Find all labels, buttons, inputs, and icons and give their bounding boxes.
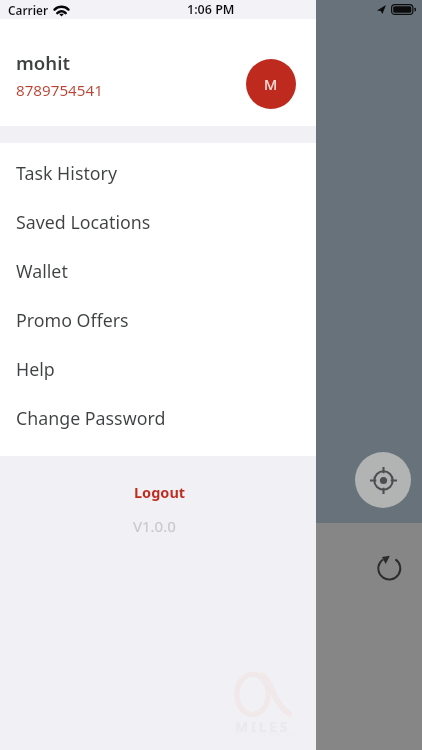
- staticText: Task History: [16, 161, 118, 185]
- staticText: Saved Locations: [16, 210, 151, 234]
- staticText: 8789754541: [16, 80, 103, 101]
- button[interactable]: Wallet: [0, 241, 316, 290]
- staticText: Wallet: [16, 259, 68, 283]
- button[interactable]: Help: [0, 339, 316, 388]
- button[interactable]: Promo Offers: [0, 290, 316, 339]
- button[interactable]: Task History: [0, 143, 316, 192]
- staticText: Logout: [134, 482, 186, 502]
- staticText: Change Password: [16, 406, 166, 430]
- button[interactable]: Logout: [128, 476, 192, 508]
- button[interactable]: Refresh: [373, 552, 406, 585]
- staticText: mohit: [16, 50, 70, 75]
- staticText: M: [264, 74, 278, 94]
- staticText: 1:06 PM: [187, 1, 235, 18]
- staticText: Promo Offers: [16, 308, 129, 332]
- staticText: V1.0.0: [133, 516, 176, 536]
- staticText: Carrier: [8, 2, 49, 18]
- button[interactable]: Profile: [246, 59, 296, 109]
- button[interactable]: Saved Locations: [0, 192, 316, 241]
- staticText: Help: [16, 357, 55, 381]
- button[interactable]: My location: [355, 452, 411, 508]
- button[interactable]: Change Password: [0, 388, 316, 437]
